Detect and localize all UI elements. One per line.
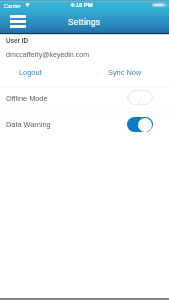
staticText: dmccafferty@keyedin.com (6, 51, 90, 59)
staticText: Data Warning (6, 120, 51, 128)
other: On (127, 117, 153, 132)
button[interactable]: Logout (14, 66, 46, 77)
button[interactable]: Menu (6, 12, 30, 31)
staticText: User ID (6, 37, 29, 44)
button[interactable]: Data Warning (0, 112, 169, 136)
staticText: Carrier (4, 3, 21, 9)
staticText: Sync Now (108, 68, 142, 76)
staticText: Logout (19, 68, 42, 76)
button[interactable]: Offline Mode (0, 86, 169, 109)
staticText: Settings (68, 17, 101, 26)
other: Off (127, 90, 153, 105)
button[interactable]: Sync Now (107, 66, 143, 77)
staticText: 4:18 PM (0, 2, 166, 8)
staticText: Offline Mode (6, 94, 48, 102)
